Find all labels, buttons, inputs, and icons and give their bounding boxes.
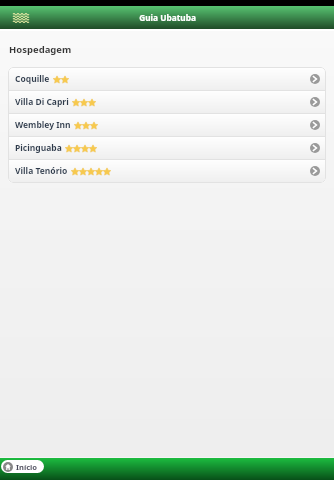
staticText: Hospedagem xyxy=(9,43,72,56)
button[interactable]: Início xyxy=(1,460,44,473)
staticText: Wembley Inn xyxy=(15,119,71,131)
button[interactable]: Picinguaba xyxy=(9,137,325,159)
button[interactable]: Menu xyxy=(9,6,32,29)
staticText: Início xyxy=(16,462,38,472)
staticText: Coquille xyxy=(15,73,50,85)
staticText: Villa Di Capri xyxy=(15,96,69,108)
button[interactable]: Villa Tenório xyxy=(9,160,325,182)
button[interactable]: Coquille xyxy=(9,68,325,90)
staticText: Picinguaba xyxy=(15,142,62,154)
staticText: Villa Tenório xyxy=(15,165,68,177)
button[interactable]: Villa Di Capri xyxy=(9,91,325,113)
staticText: Guia Ubatuba xyxy=(139,12,196,23)
button[interactable]: Wembley Inn xyxy=(9,114,325,136)
